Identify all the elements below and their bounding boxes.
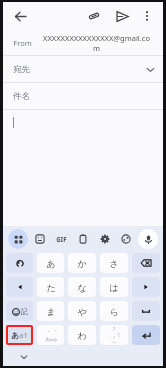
button[interactable]: From	[3, 30, 163, 55]
button[interactable]: さ	[100, 253, 128, 273]
button[interactable]: BACKSPACE	[132, 253, 160, 273]
button[interactable]: た	[37, 277, 64, 297]
button[interactable]: Hide keyboard	[17, 350, 31, 364]
button[interactable]: EMOJI	[6, 301, 33, 321]
staticText: あ	[11, 331, 19, 340]
button[interactable]: ARROW_LEFT	[6, 277, 33, 297]
staticText: ま	[46, 306, 56, 317]
staticText: や	[77, 306, 87, 317]
button[interactable]: UNDO	[6, 253, 33, 273]
button[interactable]: SPACE	[132, 301, 160, 321]
button[interactable]: Themes	[116, 229, 136, 249]
button[interactable]: Voice input	[138, 229, 158, 249]
staticText: —	[112, 339, 116, 344]
staticText: 宛先	[13, 64, 30, 75]
staticText: わ	[77, 330, 87, 341]
button[interactable]: ENTER	[132, 325, 160, 345]
button[interactable]: PUNCT	[100, 325, 128, 345]
button[interactable]: ARROW_RIGHT	[132, 277, 160, 297]
button[interactable]: 件名	[3, 83, 163, 109]
staticText: ?	[113, 326, 115, 332]
button[interactable]: Clipboard	[73, 229, 93, 249]
button[interactable]: あ	[37, 253, 64, 273]
button[interactable]: Back	[9, 5, 31, 27]
button[interactable]: Send	[111, 5, 133, 27]
button[interactable]: ま	[37, 301, 64, 321]
staticText: 件名	[13, 91, 30, 102]
button[interactable]: わ	[68, 325, 96, 345]
button[interactable]: Stickers	[30, 229, 50, 249]
button[interactable]: は	[100, 277, 128, 297]
button[interactable]: や	[68, 301, 96, 321]
button[interactable]: 宛先	[3, 56, 163, 82]
staticText: か	[77, 258, 87, 269]
button[interactable]: な	[68, 277, 96, 297]
staticText: 記	[21, 307, 28, 316]
staticText: な	[77, 282, 87, 293]
staticText: ら	[109, 306, 119, 317]
staticText: さ	[109, 258, 119, 269]
button[interactable]: Keyboard switcher	[8, 229, 28, 249]
staticText: 、。!	[108, 332, 120, 339]
button[interactable]: Settings	[95, 229, 115, 249]
staticText: た	[46, 282, 56, 293]
staticText: GIF	[56, 235, 67, 243]
staticText: XXXXXXXXXXXXXXXX@gmail.com	[40, 33, 153, 53]
button[interactable]: か	[68, 253, 96, 273]
staticText: は	[109, 282, 119, 293]
button[interactable]: Attach file	[83, 5, 105, 27]
button[interactable]: More options	[137, 6, 157, 26]
staticText: ゛ ゜	[44, 329, 57, 337]
staticText: a1	[19, 330, 28, 340]
staticText: From	[13, 38, 32, 48]
button[interactable]: ら	[100, 301, 128, 321]
button[interactable]: DAKUTEN	[37, 325, 64, 345]
staticText: 大⇔小	[45, 337, 57, 342]
button[interactable]: GIF	[51, 229, 71, 249]
button[interactable]: MODE	[6, 325, 33, 345]
staticText: あ	[46, 258, 56, 269]
